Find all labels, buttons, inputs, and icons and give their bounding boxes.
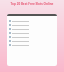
- button[interactable]: [7, 39, 57, 43]
- button[interactable]: [7, 43, 57, 47]
- button[interactable]: [7, 14, 57, 16]
- button[interactable]: [7, 23, 57, 27]
- button[interactable]: [7, 19, 57, 23]
- button[interactable]: [7, 31, 57, 35]
- staticText: Top 20 Best Free Slots Online: [4, 2, 60, 6]
- button[interactable]: [7, 27, 57, 31]
- button[interactable]: [7, 35, 57, 39]
